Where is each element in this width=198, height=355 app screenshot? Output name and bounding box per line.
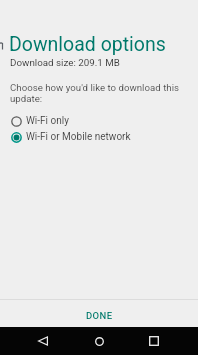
button[interactable]: Wi-Fi only xyxy=(0,113,198,129)
button[interactable]: Back xyxy=(26,327,60,355)
button[interactable]: DONE xyxy=(0,301,198,329)
button[interactable]: Recents xyxy=(137,327,171,355)
staticText: DONE xyxy=(86,310,113,321)
staticText: Download options xyxy=(9,33,166,56)
staticText: Wi-Fi or Mobile network xyxy=(26,131,131,143)
button[interactable]: Wi-Fi or Mobile network xyxy=(0,129,198,145)
staticText: Download size: 209.1 MB xyxy=(10,57,120,68)
staticText: Wi-Fi only xyxy=(26,115,69,127)
staticText: Choose how you'd like to download this u… xyxy=(10,82,198,104)
button[interactable]: Home xyxy=(82,327,116,355)
